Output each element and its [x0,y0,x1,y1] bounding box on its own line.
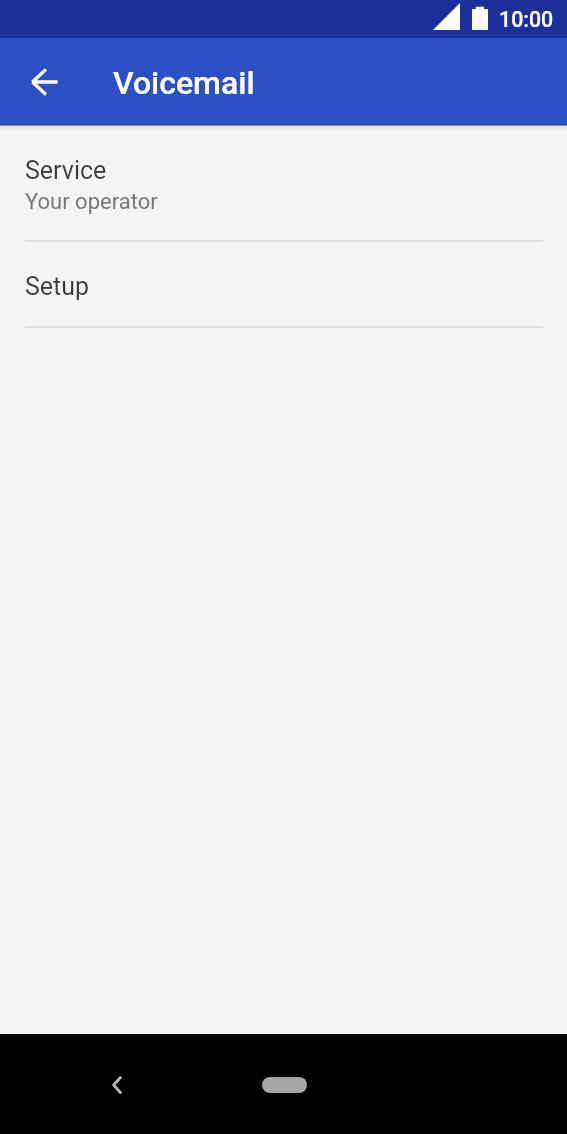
button[interactable]: Home [248,1068,320,1102]
button[interactable]: Setup [0,242,567,328]
other: Battery full [472,6,488,30]
staticText: Your operator [25,189,158,215]
button[interactable]: Navigate up [13,51,75,113]
staticText: Setup [25,272,90,301]
button[interactable]: Service [0,125,567,242]
other: Signal strength [433,3,460,30]
staticText: Service [25,156,107,185]
staticText: Voicemail [113,64,255,102]
button[interactable]: Back [86,1054,146,1114]
staticText: 10:00 [499,7,554,32]
